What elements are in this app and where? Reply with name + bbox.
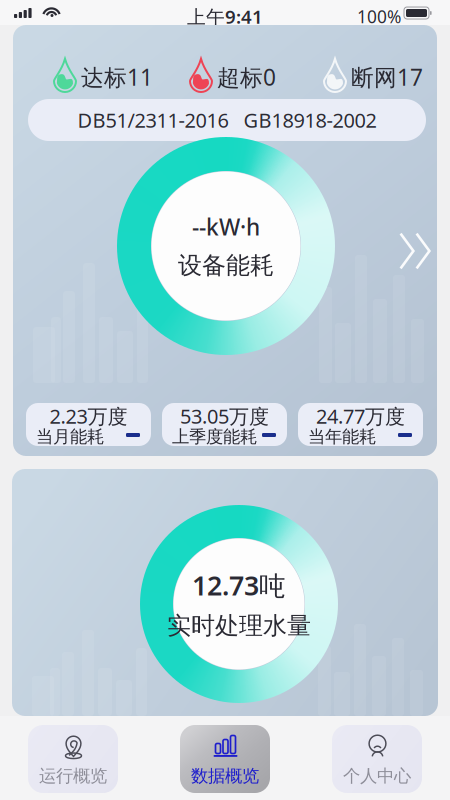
staticText: 上季度能耗 <box>172 426 257 447</box>
staticText: 53.05万度 <box>180 403 269 429</box>
staticText: 运行概览 <box>39 765 107 787</box>
staticText: 100% <box>357 5 401 28</box>
button[interactable]: 数据概览 <box>180 725 270 793</box>
staticText: --kW·h <box>192 212 260 242</box>
staticText: DB51/2311-2016 GB18918-2002 <box>77 107 376 133</box>
button[interactable]: 个人中心 <box>332 725 422 793</box>
staticText: 数据概览 <box>191 765 259 787</box>
staticText: 当年能耗 <box>308 426 376 447</box>
staticText: 2.23万度 <box>49 403 127 429</box>
staticText: 当月能耗 <box>36 426 104 447</box>
staticText: 实时处理水量 <box>167 611 311 640</box>
staticText: 超标0 <box>217 62 276 92</box>
staticText: 12.73吨 <box>192 568 286 603</box>
staticText: 上午9:41 <box>187 4 263 29</box>
staticText: 达标11 <box>81 62 153 92</box>
button[interactable]: 运行概览 <box>28 725 118 793</box>
staticText: 24.77万度 <box>316 403 405 429</box>
staticText: 个人中心 <box>343 765 411 787</box>
staticText: 设备能耗 <box>178 251 274 280</box>
staticText: 断网17 <box>351 62 423 92</box>
